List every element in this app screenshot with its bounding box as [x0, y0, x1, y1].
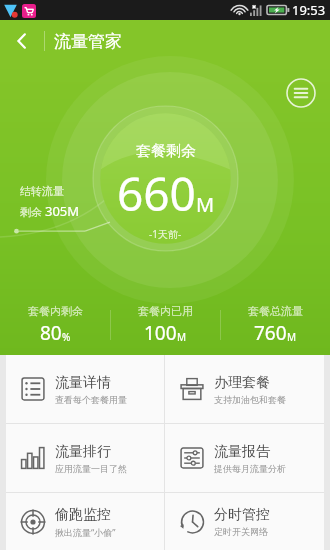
staticText: M	[177, 330, 187, 344]
button[interactable]: 办理套餐	[165, 355, 324, 423]
staticText: 19:53	[292, 1, 326, 19]
staticText: 流量报告	[214, 443, 270, 461]
staticText: -1天前-	[149, 227, 182, 241]
staticText: 查看每个套餐用量	[55, 394, 127, 405]
staticText: 定时开关网络	[214, 526, 268, 537]
staticText: 套餐内剩余	[28, 304, 83, 318]
staticText: 结转流量	[20, 184, 64, 198]
staticText: 80	[40, 320, 62, 346]
button[interactable]: 套餐总流量	[221, 304, 330, 346]
staticText: 支持加油包和套餐	[214, 394, 286, 405]
staticText: 分时管控	[214, 506, 270, 524]
staticText: M	[287, 330, 297, 344]
staticText: 套餐剩余	[136, 142, 196, 161]
button[interactable]: 流量详情	[6, 355, 164, 423]
staticText: 流量详情	[55, 374, 111, 392]
staticText: 揪出流量“小偷”	[55, 526, 116, 538]
button[interactable]: 流量报告	[165, 424, 324, 492]
staticText: 提供每月流量分析	[214, 463, 286, 474]
staticText: 剩余	[20, 204, 45, 219]
staticText: 流量排行	[55, 443, 111, 461]
staticText: 100	[144, 320, 177, 346]
button[interactable]: 流量排行	[6, 424, 164, 492]
button[interactable]: 套餐内已用	[111, 304, 220, 346]
staticText: 套餐总流量	[248, 304, 303, 318]
staticText: 办理套餐	[214, 374, 270, 392]
button[interactable]: 套餐内剩余	[0, 304, 110, 346]
button[interactable]: 偷跑监控	[6, 493, 164, 550]
button[interactable]: Back	[0, 20, 44, 62]
staticText: M	[196, 191, 215, 218]
button[interactable]: Menu	[286, 78, 316, 108]
staticText: 305M	[45, 202, 80, 220]
staticText: %	[62, 330, 71, 344]
staticText: 应用流量一目了然	[55, 463, 127, 474]
staticText: 套餐内已用	[138, 304, 193, 318]
button[interactable]: 分时管控	[165, 493, 324, 550]
staticText: 760	[254, 320, 287, 346]
staticText: 偷跑监控	[55, 506, 111, 524]
staticText: 流量管家	[54, 31, 122, 52]
staticText: 660	[117, 162, 196, 225]
